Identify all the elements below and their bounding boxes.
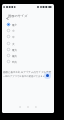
staticText: 小 — [12, 29, 15, 32]
staticText: 一部のアプリでは表示の変更ができません — [3, 75, 48, 78]
staticText: 最小 — [12, 23, 18, 26]
staticText: 中 — [12, 35, 15, 38]
button[interactable]: 特大 — [2, 58, 54, 64]
button[interactable]: 最小 — [2, 21, 54, 27]
button[interactable]: 大 — [2, 40, 54, 46]
button[interactable]: 中 — [2, 33, 54, 39]
staticText: 大 — [12, 42, 15, 45]
button[interactable]: 極大 — [2, 52, 54, 58]
button[interactable]: 適用 — [44, 72, 51, 79]
staticText: 画面のサイズ — [8, 14, 28, 18]
staticText: 最大 — [12, 48, 18, 51]
button[interactable]: 戻る — [4, 15, 10, 21]
staticText: 極大 — [12, 54, 18, 57]
staticText: 特大 — [12, 60, 18, 63]
staticText: 画面に表示されるアイテムのサイズを変更 — [3, 71, 52, 74]
button[interactable]: 最大 — [2, 46, 54, 52]
button[interactable]: 小 — [2, 27, 54, 33]
